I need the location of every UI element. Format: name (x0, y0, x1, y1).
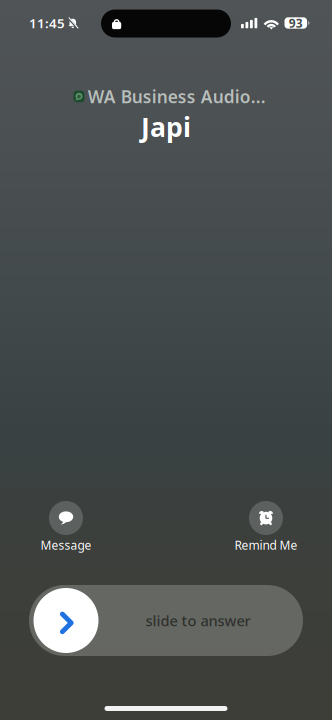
staticText: slide to answer (145, 611, 250, 630)
staticText: WA Business Audio... (88, 85, 266, 108)
staticText: 11:45 (29, 14, 65, 32)
staticText: Remind Me (234, 537, 297, 553)
button[interactable]: slide to answer (29, 585, 303, 656)
button[interactable]: Message (0, 501, 132, 551)
staticText: 93 (289, 15, 303, 31)
button[interactable]: Remind Me (200, 501, 332, 551)
staticText: Message (40, 537, 91, 553)
staticText: Japi (141, 109, 191, 144)
